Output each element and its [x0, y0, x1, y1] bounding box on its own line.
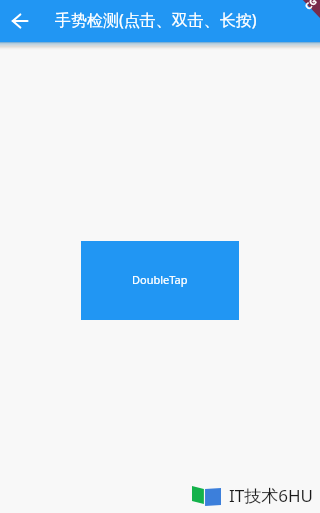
staticText: CG — [302, 0, 319, 12]
staticText: DoubleTap — [132, 272, 188, 287]
staticText: IT技术6HU — [229, 484, 313, 507]
button[interactable]: Back — [8, 9, 32, 33]
button[interactable]: DoubleTap — [81, 241, 239, 320]
staticText: 手势检测(点击、双击、长按) — [55, 9, 257, 31]
